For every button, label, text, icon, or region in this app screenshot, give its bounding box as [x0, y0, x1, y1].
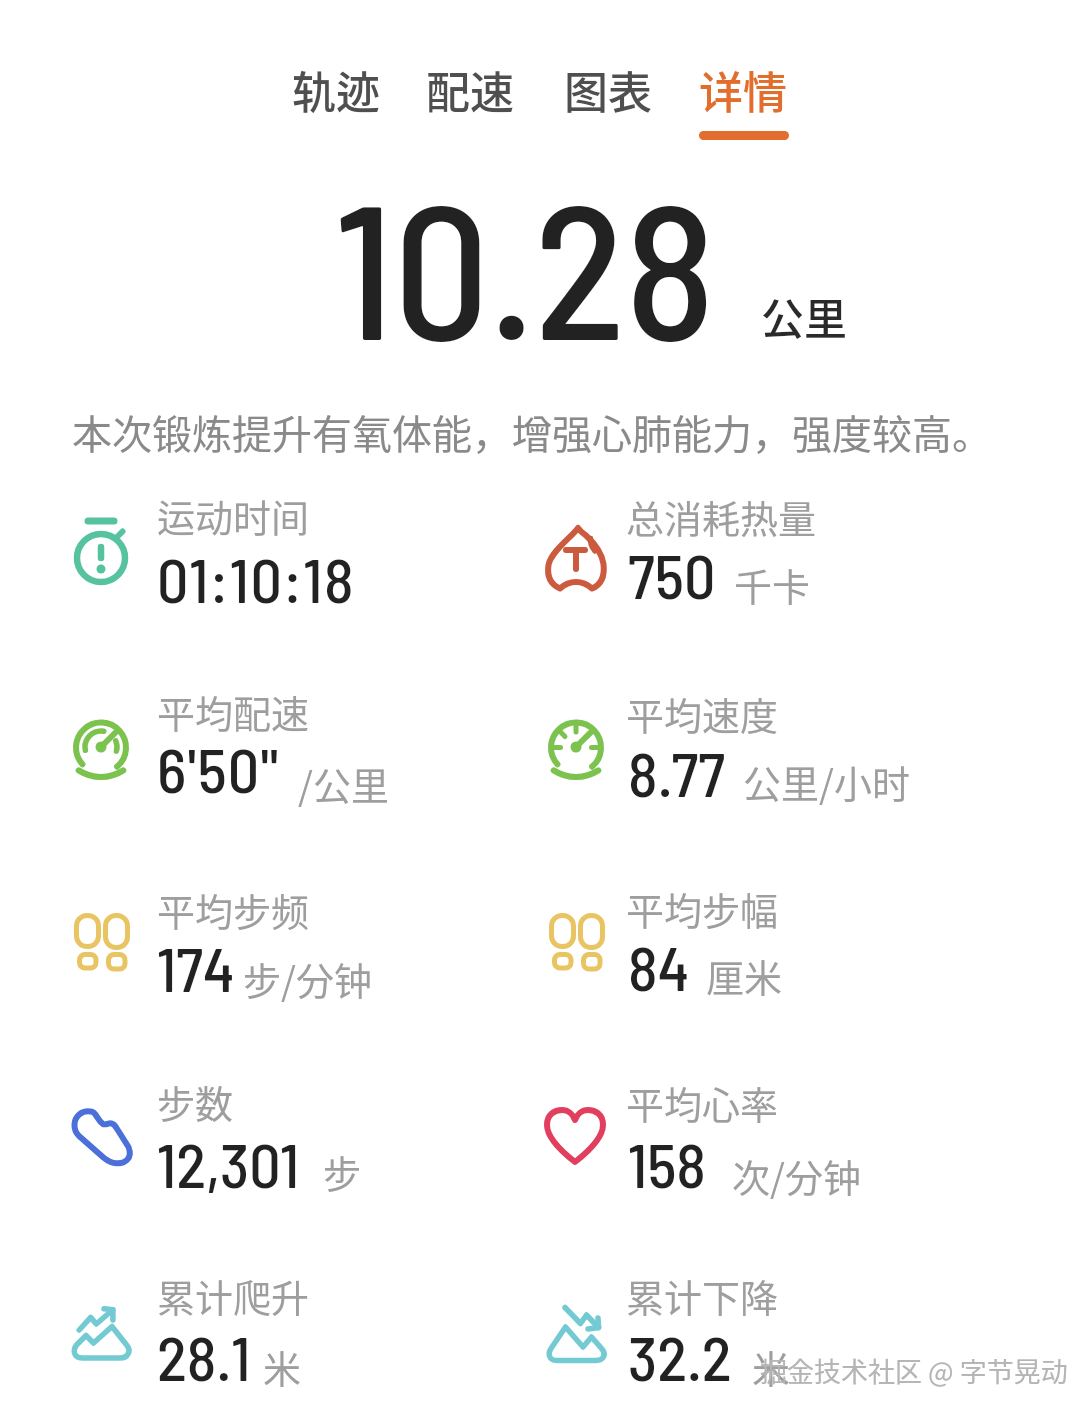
staticText: 轨迹 [292, 58, 380, 122]
staticText: 掘金技术社区 @ 字节晃动 [760, 1351, 1068, 1390]
staticText: 总消耗热量 [626, 489, 817, 544]
staticText: 750 [628, 537, 716, 611]
staticText: 步/分钟 [243, 951, 372, 1006]
staticText: 步数 [157, 1074, 234, 1129]
button[interactable]: 详情 [678, 0, 808, 190]
staticText: 厘米 [706, 948, 783, 1003]
staticText: 配速 [426, 58, 514, 122]
staticText: 28.1 [157, 1319, 251, 1393]
staticText: 米 [752, 1339, 791, 1394]
button[interactable]: 轨迹 [271, 0, 401, 190]
staticText: 公里 [761, 285, 847, 347]
staticText: 平均速度 [626, 686, 779, 741]
staticText: /公里 [298, 756, 389, 811]
staticText: 平均配速 [157, 684, 310, 739]
staticText: 次/分钟 [732, 1148, 861, 1203]
staticText: 图表 [564, 58, 652, 122]
staticText: 步 [323, 1144, 362, 1199]
staticText: 千卡 [734, 557, 811, 612]
staticText: 174 [157, 930, 235, 1004]
staticText: 01:10:18 [157, 541, 356, 615]
staticText: 6'50" [157, 731, 280, 805]
staticText: 12,301 [157, 1126, 300, 1200]
button[interactable]: 图表 [543, 0, 673, 190]
staticText: 运动时间 [157, 488, 310, 543]
staticText: 累计下降 [626, 1268, 779, 1323]
staticText: 8.77 [628, 735, 725, 809]
staticText: 平均步幅 [626, 881, 779, 936]
staticText: 详情 [699, 58, 787, 122]
staticText: 本次锻炼提升有氧体能，增强心肺能力，强度较高。 [72, 403, 992, 461]
staticText: 累计爬升 [157, 1268, 310, 1323]
staticText: 米 [263, 1339, 302, 1394]
staticText: 平均步频 [157, 882, 310, 937]
staticText: 32.2 [628, 1319, 732, 1393]
staticText: 10.28 [335, 151, 716, 378]
button[interactable]: 配速 [405, 0, 535, 190]
staticText: 平均心率 [626, 1075, 779, 1130]
staticText: 158 [628, 1126, 706, 1200]
staticText: 公里/小时 [743, 754, 910, 809]
staticText: 84 [628, 929, 689, 1003]
